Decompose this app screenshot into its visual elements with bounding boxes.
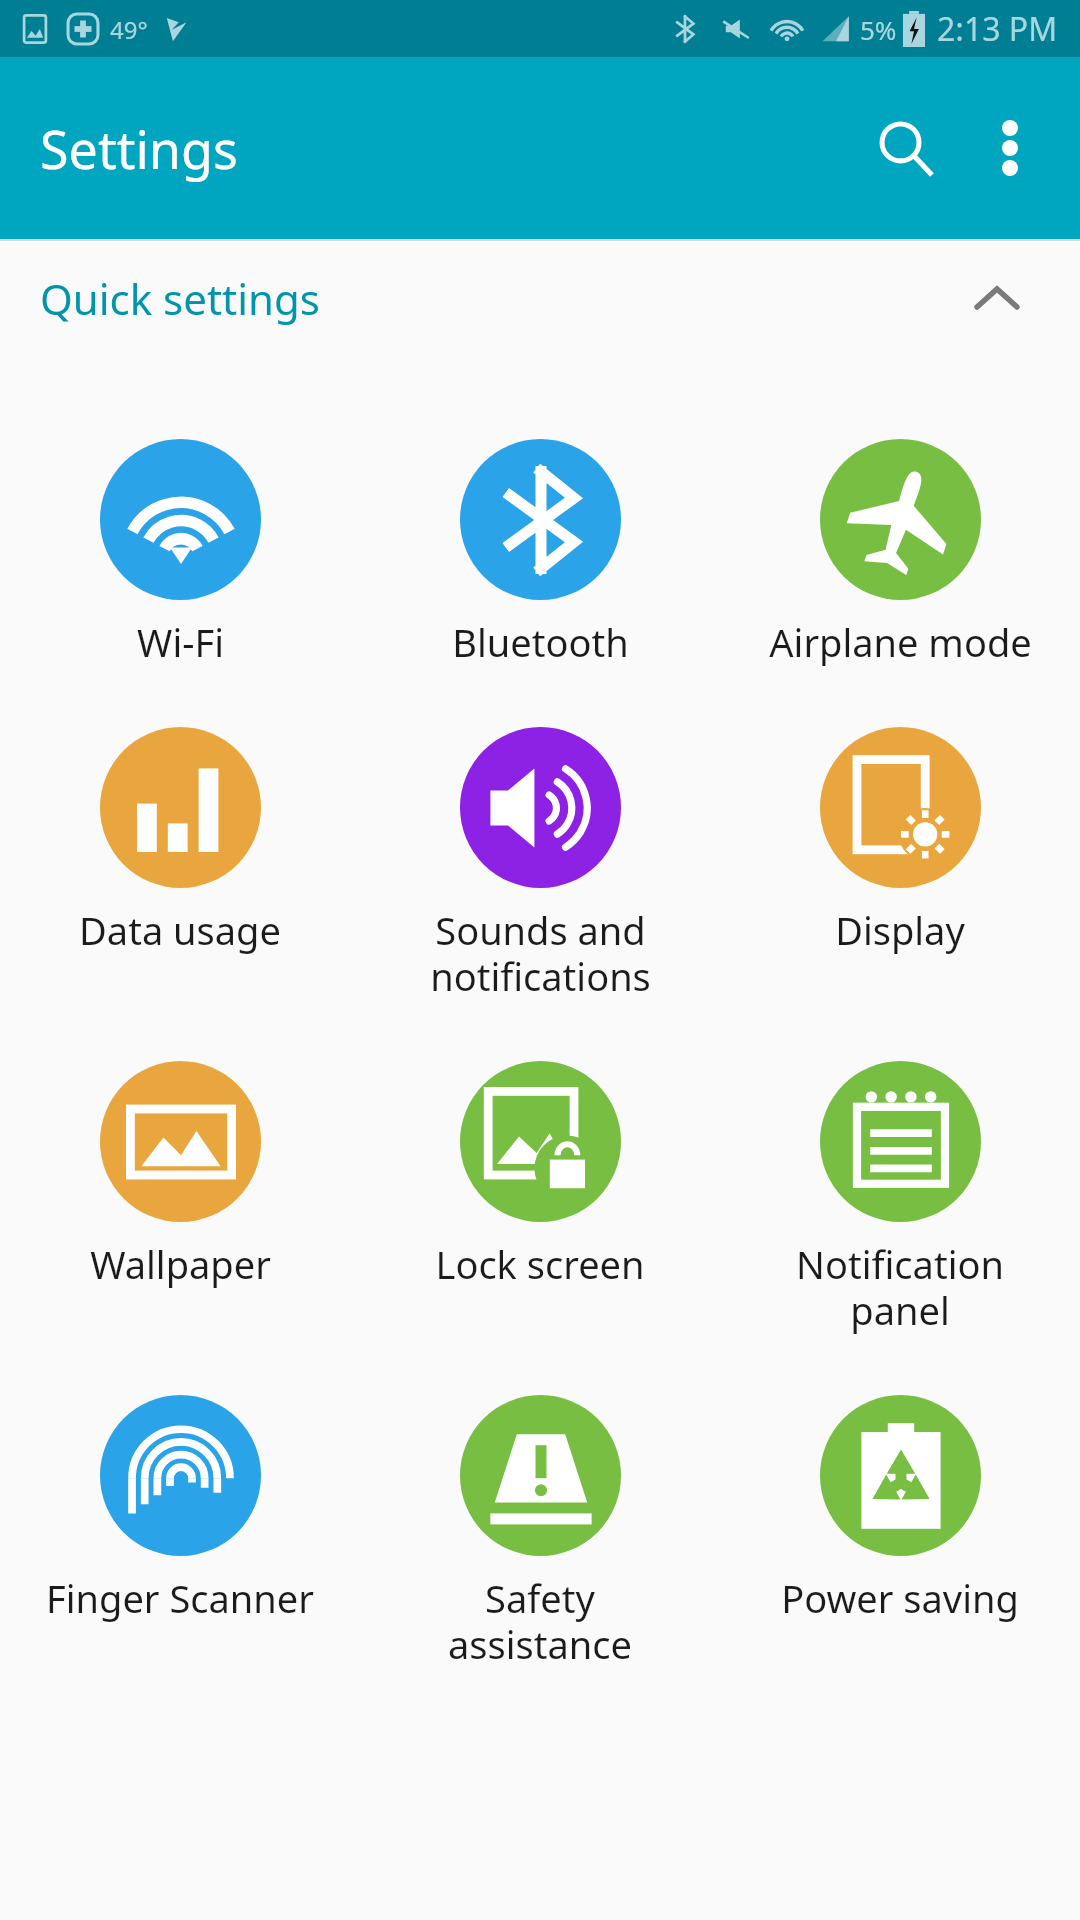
staticText: 2:13 PM — [937, 7, 1058, 51]
staticText: Bluetooth — [452, 616, 629, 668]
staticText: Lock screen — [435, 1238, 645, 1290]
staticText: Notification panel — [796, 1238, 1004, 1336]
staticText: Airplane mode — [769, 616, 1032, 668]
staticText: Display — [835, 904, 965, 956]
button[interactable]: More options — [960, 98, 1060, 198]
button[interactable]: Safety assistance — [360, 1395, 720, 1670]
staticText: Quick settings — [40, 270, 320, 327]
button[interactable]: Data usage — [0, 727, 360, 956]
button[interactable]: Power saving — [720, 1395, 1080, 1624]
button[interactable]: Airplane mode — [720, 439, 1080, 668]
button[interactable]: Finger Scanner — [0, 1395, 360, 1624]
button[interactable]: Bluetooth — [360, 439, 720, 668]
button[interactable]: Quick settings — [0, 241, 1080, 356]
button[interactable]: Display — [720, 727, 1080, 956]
button[interactable]: Sounds and notifications — [360, 727, 720, 1002]
staticText: Sounds and notifications — [430, 904, 651, 1002]
staticText: Data usage — [79, 904, 281, 956]
staticText: Finger Scanner — [46, 1572, 314, 1624]
staticText: 5% — [860, 12, 897, 47]
staticText: Settings — [40, 113, 238, 184]
staticText: Wi-Fi — [137, 616, 224, 668]
staticText: Wallpaper — [90, 1238, 271, 1290]
button[interactable]: Notification panel — [720, 1061, 1080, 1336]
staticText: Power saving — [781, 1572, 1019, 1624]
button[interactable]: Search — [850, 93, 960, 203]
other: Collapse — [972, 274, 1022, 324]
button[interactable]: Wi-Fi — [0, 439, 360, 668]
button[interactable]: Lock screen — [360, 1061, 720, 1290]
staticText: Safety assistance — [448, 1572, 632, 1670]
staticText: 49° — [110, 13, 148, 46]
button[interactable]: Wallpaper — [0, 1061, 360, 1290]
